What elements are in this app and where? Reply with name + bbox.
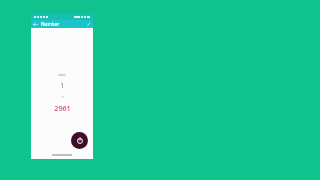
button[interactable]: Add number [71,132,88,149]
staticText: Number [41,21,60,27]
staticText: ◦ [61,118,64,122]
staticText: 1 [60,81,64,90]
staticText: value [58,73,66,77]
button[interactable]: Back [31,20,39,28]
staticText: × [61,94,64,99]
button[interactable]: Edit [85,20,93,28]
button[interactable]: 2961 [54,103,71,113]
